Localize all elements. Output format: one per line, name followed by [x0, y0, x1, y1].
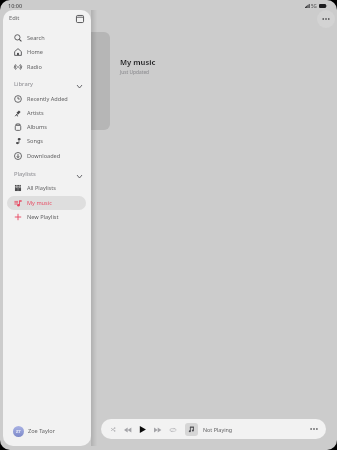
staticText: Search: [27, 34, 45, 42]
staticText: Zoe Taylor: [28, 427, 55, 435]
staticText: My music: [27, 199, 52, 207]
button[interactable]: Shuffle: [108, 424, 119, 435]
staticText: Downloaded: [27, 152, 61, 160]
button[interactable]: Songs: [7, 134, 86, 148]
button[interactable]: Downloaded: [7, 149, 86, 163]
button[interactable]: Previous: [122, 424, 133, 435]
button[interactable]: Toggle sidebar: [74, 13, 85, 24]
staticText: Albums: [27, 123, 47, 131]
button[interactable]: Edit: [9, 14, 20, 22]
button[interactable]: More: [307, 422, 321, 436]
staticText: My music: [120, 57, 156, 67]
staticText: ZT: [16, 429, 21, 435]
staticText: Playlists: [14, 170, 36, 178]
button[interactable]: Search: [7, 31, 86, 45]
staticText: Artists: [27, 109, 44, 117]
button[interactable]: Artists: [7, 106, 86, 120]
staticText: 10:00: [8, 2, 23, 9]
button[interactable]: Radio: [7, 60, 86, 74]
staticText: Radio: [27, 63, 42, 71]
staticText: Not Playing: [203, 426, 233, 433]
button[interactable]: More options: [317, 10, 335, 28]
button[interactable]: Albums: [7, 120, 86, 134]
staticText: New Playlist: [27, 213, 59, 221]
staticText: All Playlists: [27, 184, 56, 192]
staticText: Recently Added: [27, 95, 68, 103]
staticText: Library: [14, 80, 33, 88]
staticText: Songs: [27, 137, 44, 145]
staticText: Home: [27, 48, 43, 56]
button[interactable]: ZT: [13, 418, 91, 444]
button[interactable]: New Playlist: [7, 210, 86, 224]
button[interactable]: My music: [7, 196, 86, 210]
staticText: 5G: [311, 3, 317, 9]
button[interactable]: All Playlists: [7, 181, 86, 195]
button[interactable]: Repeat: [167, 424, 178, 435]
button[interactable]: Home: [7, 45, 86, 59]
staticText: Just Updated: [120, 69, 150, 76]
button[interactable]: Recently Added: [7, 92, 86, 106]
button[interactable]: Play: [137, 424, 148, 435]
button[interactable]: Next: [152, 424, 163, 435]
